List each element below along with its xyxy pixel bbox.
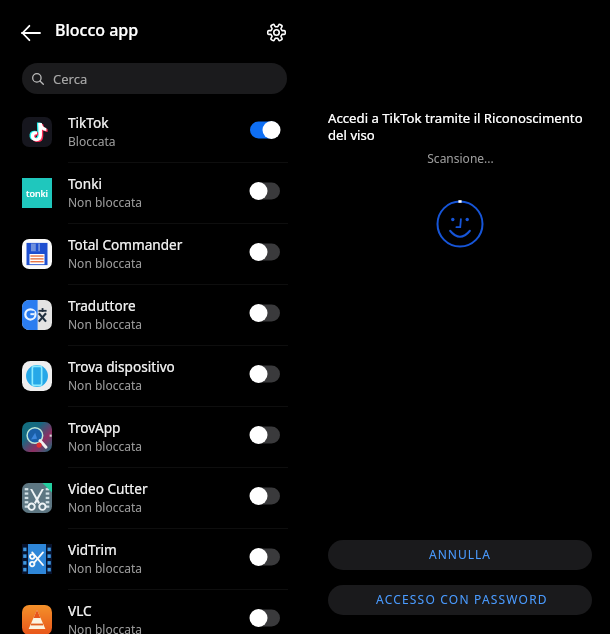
button[interactable]: VidTrim	[0, 529, 610, 590]
staticText: TikTok	[68, 113, 109, 132]
staticText: Non bloccata	[68, 255, 142, 271]
button[interactable]: Back	[12, 14, 49, 51]
button[interactable]: ACCESSO CON PASSWORD	[328, 585, 592, 615]
button[interactable]: Block Trova dispositivo	[242, 359, 288, 389]
staticText: Non bloccata	[68, 621, 142, 634]
staticText: tonki	[26, 187, 49, 199]
staticText: Video Cutter	[68, 479, 148, 498]
staticText: Traduttore	[68, 296, 136, 315]
staticText: Non bloccata	[68, 560, 142, 576]
staticText: Non bloccata	[68, 194, 142, 210]
button[interactable]: Unblock TikTok	[242, 115, 288, 145]
staticText: VLC	[68, 601, 92, 620]
staticText: Tonki	[68, 174, 102, 193]
staticText: VidTrim	[68, 540, 117, 559]
button[interactable]: VLC	[0, 590, 610, 634]
staticText: ANNULLA	[429, 546, 491, 562]
button[interactable]: tonki	[0, 163, 610, 224]
staticText: Non bloccata	[68, 316, 142, 332]
staticText: Bloccata	[68, 133, 116, 149]
button[interactable]: Trova dispositivo	[0, 346, 610, 407]
button[interactable]: Block TrovApp	[242, 420, 288, 450]
staticText: Trova dispositivo	[68, 357, 175, 376]
staticText: Scansione...	[308, 150, 610, 166]
button[interactable]: TikTok	[0, 102, 610, 163]
staticText: Total Commander	[68, 235, 183, 254]
staticText: TrovApp	[68, 418, 121, 437]
button[interactable]: ANNULLA	[328, 540, 592, 570]
button[interactable]: Settings	[258, 14, 295, 51]
button[interactable]: Block VidTrim	[242, 542, 288, 572]
staticText: ACCESSO CON PASSWORD	[376, 591, 548, 607]
button[interactable]: Block Traduttore	[242, 298, 288, 328]
button[interactable]: Cerca	[22, 63, 287, 94]
staticText: Blocco app	[55, 19, 139, 41]
button[interactable]: Block VLC	[242, 603, 288, 633]
button[interactable]: TrovApp	[0, 407, 610, 468]
staticText: Non bloccata	[68, 438, 142, 454]
button[interactable]: Block Video Cutter	[242, 481, 288, 511]
button[interactable]: Video Cutter	[0, 468, 610, 529]
staticText: Non bloccata	[68, 377, 142, 393]
staticText: Cerca	[53, 70, 88, 88]
button[interactable]: Block Tonki	[242, 176, 288, 206]
button[interactable]: Traduttore	[0, 285, 610, 346]
button[interactable]: Total Commander	[0, 224, 610, 285]
staticText: Non bloccata	[68, 499, 142, 515]
staticText: Accedi a TikTok tramite il Riconosciment…	[328, 109, 592, 144]
button[interactable]: Block Total Commander	[242, 237, 288, 267]
